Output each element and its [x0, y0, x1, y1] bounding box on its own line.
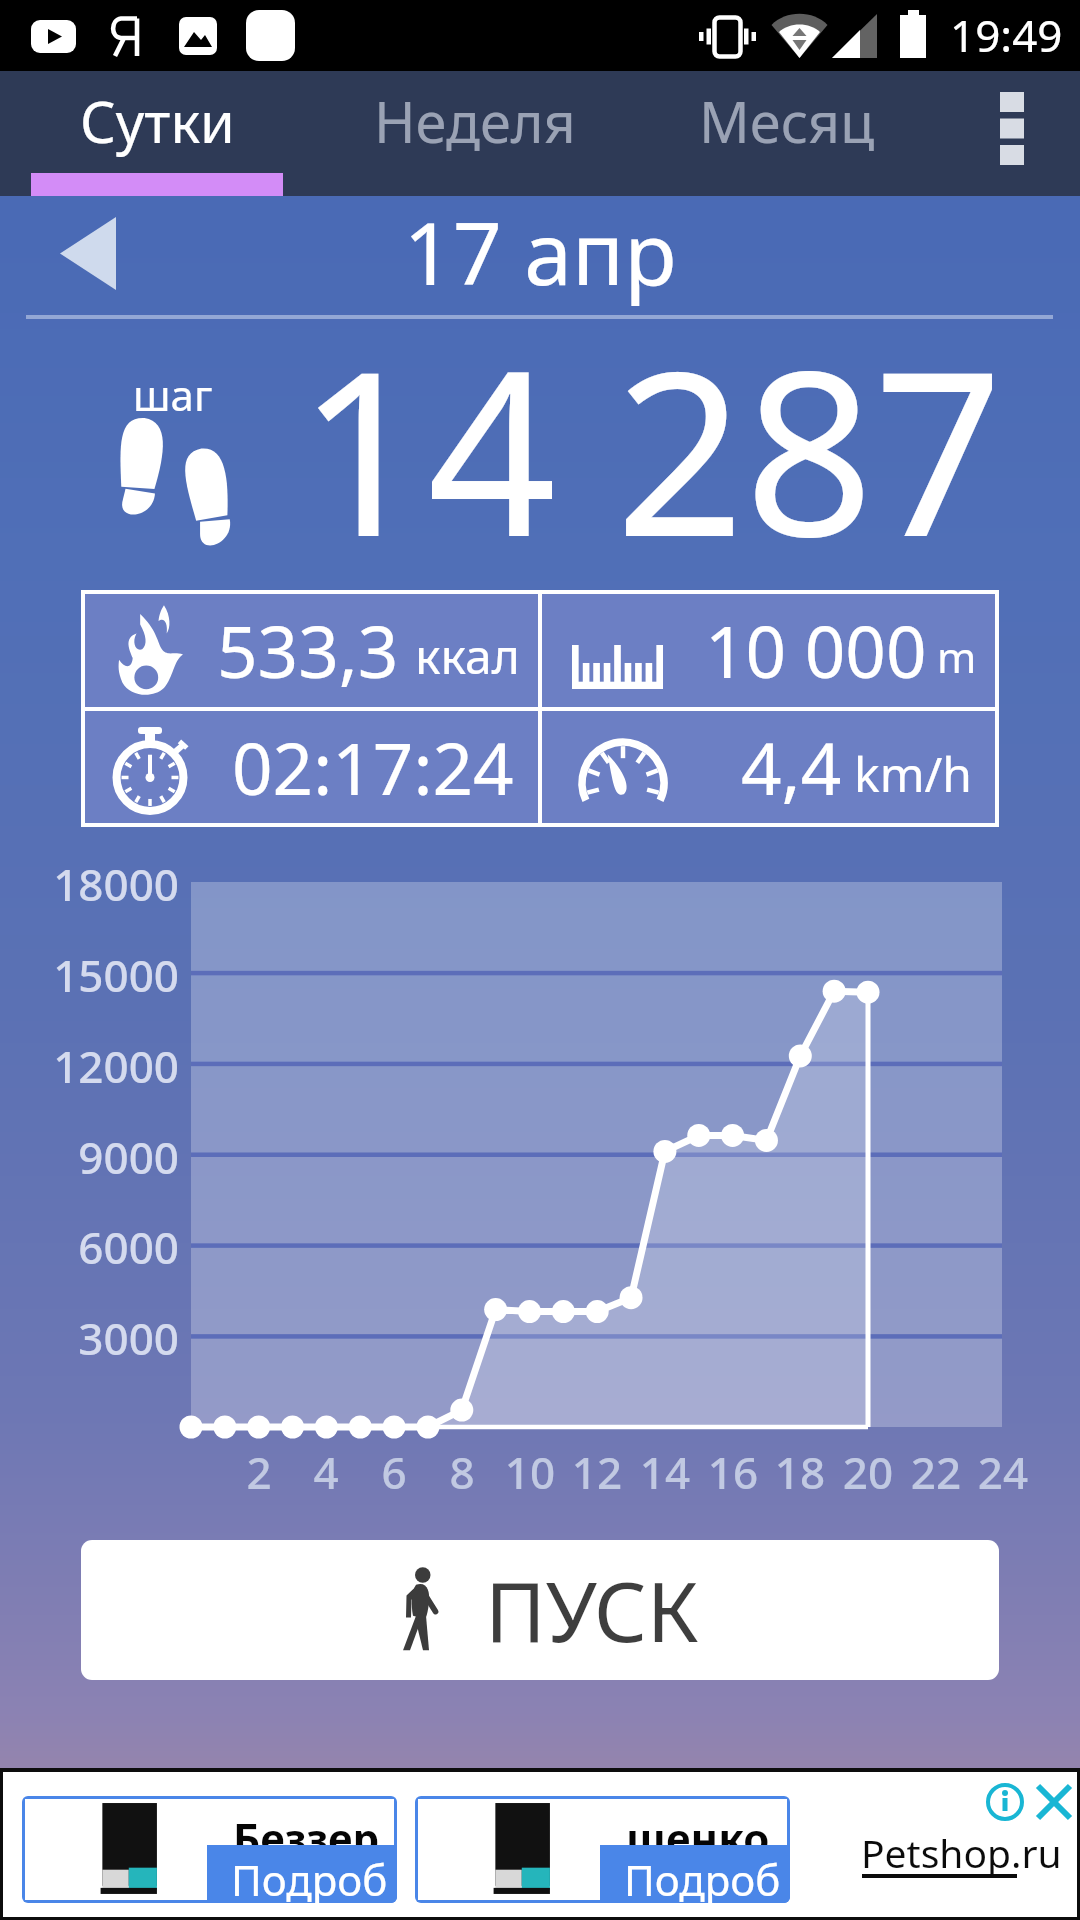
staticText: 14	[620, 1442, 710, 1502]
staticText: Месяц	[699, 83, 875, 159]
staticText: шаг	[133, 366, 213, 423]
staticText: 4	[281, 1442, 371, 1502]
staticText: ккал	[415, 623, 520, 688]
staticText: 533,3	[217, 602, 399, 699]
staticText: Petshop.ru	[861, 1826, 1062, 1879]
staticText: m	[937, 628, 977, 685]
button[interactable]: ПУСК	[81, 1540, 999, 1680]
staticText: щенков…	[626, 1809, 790, 1866]
button[interactable]: щенков…	[418, 1799, 787, 1900]
staticText: 22	[891, 1442, 981, 1502]
staticText: 9000	[0, 1127, 179, 1187]
staticText: 15000	[0, 945, 179, 1005]
staticText: 18	[755, 1442, 845, 1502]
staticText: Неделя	[374, 83, 576, 159]
staticText: Сутки	[80, 83, 235, 159]
staticText: 10 000	[705, 602, 927, 699]
button[interactable]: Сутки	[31, 71, 283, 196]
button[interactable]: Close ad	[1034, 1782, 1074, 1822]
staticText: Беззер…	[233, 1809, 397, 1866]
staticText: 19:49	[950, 5, 1063, 65]
staticText: 24	[958, 1442, 1048, 1502]
staticText: Подроб…	[231, 1851, 397, 1903]
staticText: 16	[688, 1442, 778, 1502]
button[interactable]: 533,3	[85, 594, 538, 707]
staticText: Подроб…	[624, 1851, 790, 1903]
staticText: km/h	[854, 741, 973, 806]
staticText: 4,4	[741, 719, 842, 816]
staticText: 02:17:24	[232, 719, 514, 816]
staticText: 8	[417, 1442, 507, 1502]
button[interactable]: Неделя	[316, 71, 634, 196]
staticText: 10	[485, 1442, 575, 1502]
staticText: 6	[349, 1442, 439, 1502]
button[interactable]: Previous day	[32, 202, 143, 304]
staticText: 3000	[0, 1308, 179, 1368]
button[interactable]: More options	[960, 71, 1080, 196]
button[interactable]: Ad info	[985, 1782, 1025, 1822]
staticText: 2	[214, 1442, 304, 1502]
staticText: 14 287	[0, 294, 1003, 602]
staticText: 18000	[0, 854, 179, 914]
button[interactable]: 10 000	[542, 594, 995, 707]
staticText: 20	[823, 1442, 913, 1502]
button[interactable]: Месяц	[644, 71, 930, 196]
button[interactable]: 4,4	[542, 711, 995, 823]
button[interactable]: Беззер…	[25, 1799, 394, 1900]
staticText: 6000	[0, 1217, 179, 1277]
staticText: ПУСК	[485, 1553, 699, 1666]
button[interactable]: 02:17:24	[85, 711, 538, 823]
staticText: 12	[552, 1442, 642, 1502]
staticText: 12000	[0, 1036, 179, 1096]
staticText: 17 апр	[0, 193, 1080, 310]
